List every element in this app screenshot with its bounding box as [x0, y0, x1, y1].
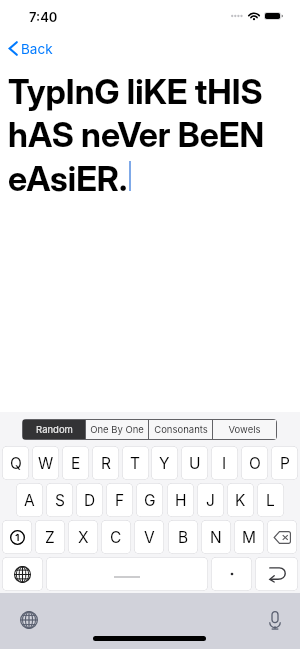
staticText: G	[144, 491, 156, 510]
staticText: Q	[10, 454, 22, 473]
staticText: T	[130, 454, 141, 473]
staticText: E	[71, 454, 81, 473]
staticText: U	[189, 454, 201, 473]
button[interactable]: F	[106, 483, 133, 517]
button[interactable]: Y	[151, 446, 178, 480]
staticText: hAS neVer BeEN	[8, 114, 265, 155]
staticText: Z	[45, 528, 55, 547]
button[interactable]: M	[234, 520, 264, 554]
button[interactable]: Q	[2, 446, 29, 480]
staticText: L	[266, 491, 275, 510]
staticText: TypInG liKE tHIS	[8, 71, 263, 112]
staticText: M	[242, 528, 257, 547]
button[interactable]: R	[92, 446, 119, 480]
button[interactable]: Space	[46, 557, 208, 591]
staticText: B	[178, 528, 189, 547]
staticText: W	[38, 454, 54, 473]
staticText: P	[280, 454, 290, 473]
button[interactable]: Backspace	[267, 520, 297, 554]
button[interactable]: Emoji keyboard	[17, 608, 41, 632]
button[interactable]: Z	[35, 520, 65, 554]
button[interactable]: Shift	[2, 520, 32, 554]
button[interactable]: I	[211, 446, 238, 480]
staticText: S	[55, 491, 65, 510]
button[interactable]: T	[122, 446, 149, 480]
staticText: H	[175, 491, 187, 510]
staticText: A	[24, 491, 35, 510]
staticText: R	[101, 454, 111, 473]
button[interactable]: C	[101, 520, 131, 554]
staticText: J	[206, 491, 215, 510]
button[interactable]: B	[168, 520, 198, 554]
button[interactable]: Dictation	[263, 608, 287, 632]
staticText: C	[110, 528, 122, 547]
button[interactable]: One By One	[86, 420, 148, 439]
button[interactable]: D	[76, 483, 103, 517]
staticText: Random	[36, 424, 73, 435]
staticText: N	[210, 528, 222, 547]
button[interactable]: X	[68, 520, 98, 554]
button[interactable]: J	[197, 483, 224, 517]
button[interactable]: V	[134, 520, 164, 554]
button[interactable]: O	[241, 446, 268, 480]
staticText: D	[84, 491, 96, 510]
button[interactable]: Period	[211, 557, 252, 591]
button[interactable]: P	[271, 446, 298, 480]
staticText: One By One	[90, 424, 144, 435]
button[interactable]: L	[257, 483, 284, 517]
staticText: Vowels	[228, 424, 261, 435]
staticText: V	[144, 528, 155, 547]
button[interactable]: Random	[23, 420, 85, 439]
button[interactable]: Consonants	[149, 420, 212, 439]
button[interactable]: E	[62, 446, 89, 480]
button[interactable]: N	[201, 520, 231, 554]
button[interactable]: A	[16, 483, 43, 517]
button[interactable]: Back	[8, 37, 53, 60]
button[interactable]: G	[136, 483, 163, 517]
staticText: eAsiER.	[8, 158, 128, 199]
staticText: Y	[159, 454, 170, 473]
staticText: O	[249, 454, 261, 473]
button[interactable]: Vowels	[213, 420, 276, 439]
button[interactable]: S	[46, 483, 73, 517]
staticText: 7:40	[29, 9, 58, 25]
staticText: I	[222, 454, 227, 473]
button[interactable]: K	[227, 483, 254, 517]
button[interactable]: Next keyboard	[2, 557, 43, 591]
button[interactable]: H	[167, 483, 194, 517]
button[interactable]: Return	[255, 557, 298, 591]
button[interactable]: U	[181, 446, 208, 480]
staticText: X	[78, 528, 89, 547]
staticText: F	[115, 491, 125, 510]
staticText: Consonants	[154, 424, 208, 435]
staticText: Back	[21, 41, 53, 57]
staticText: K	[235, 491, 246, 510]
button[interactable]: W	[32, 446, 59, 480]
